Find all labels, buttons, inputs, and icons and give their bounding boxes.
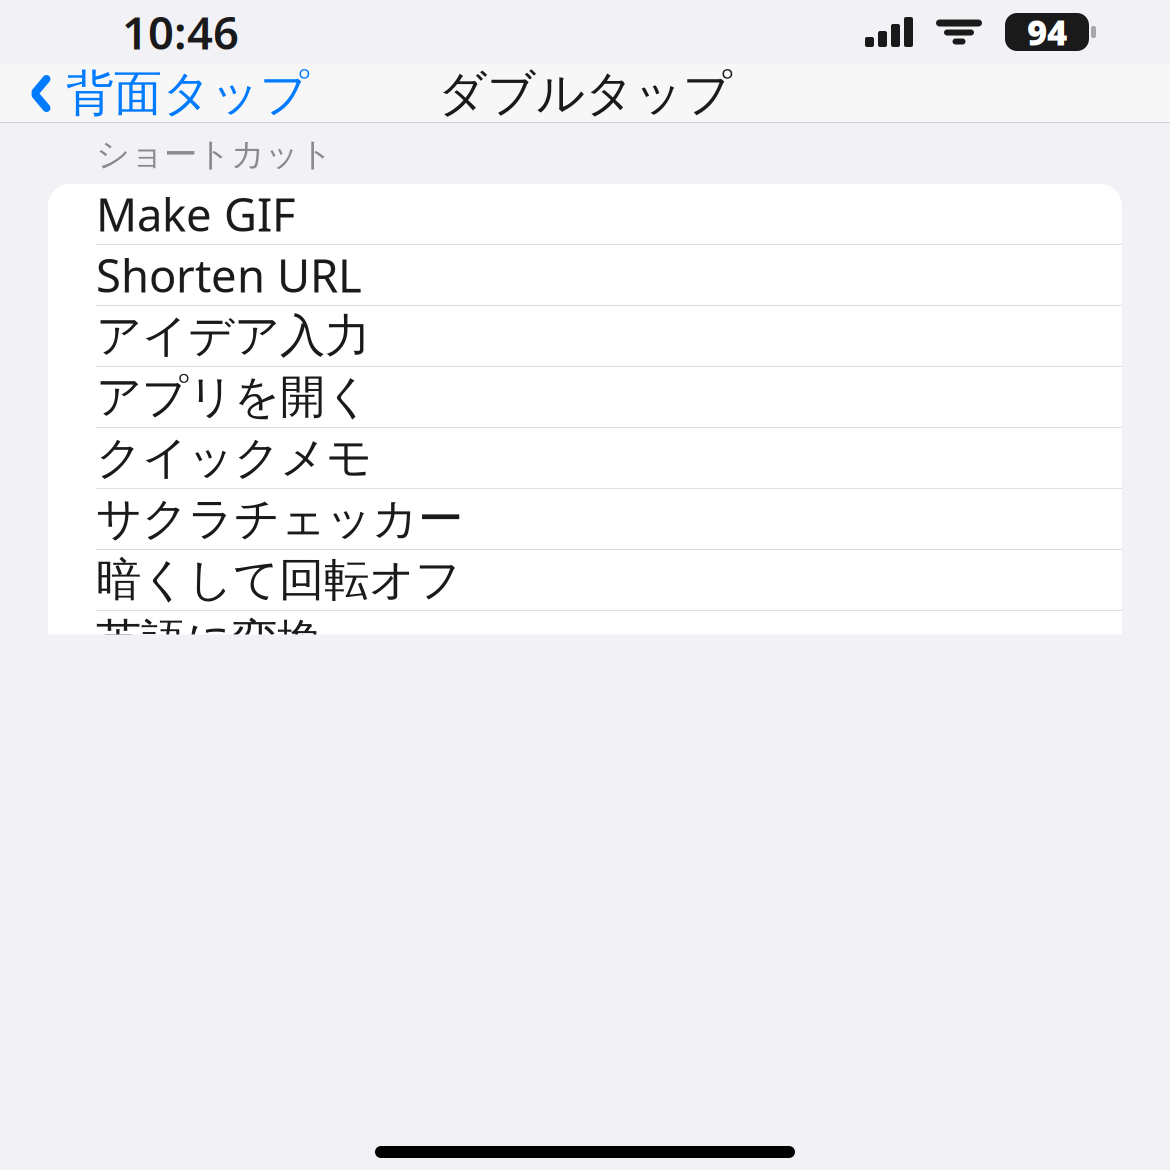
button[interactable]: クイックメモ <box>48 428 1122 489</box>
button[interactable]: サクラチェッカー <box>48 489 1122 550</box>
button[interactable]: アプリを開く <box>48 367 1122 428</box>
staticText: クイックメモ <box>96 430 372 486</box>
button[interactable]: Shorten URL <box>48 245 1122 306</box>
staticText: 10:46 <box>122 2 239 62</box>
staticText: 英語に変換 <box>96 613 322 669</box>
button[interactable]: 英語に変換 <box>48 611 1122 672</box>
staticText: 暗くして回転オフ <box>96 552 461 608</box>
staticText: ショートカット <box>96 134 333 175</box>
staticText: 94 <box>1027 9 1067 55</box>
staticText: 背面タップ <box>66 64 309 123</box>
button[interactable]: 背面タップに戻る <box>0 58 309 129</box>
button[interactable]: アイデア入力 <box>48 306 1122 367</box>
button[interactable]: Make GIF <box>48 184 1122 245</box>
staticText: アイデア入力 <box>96 308 370 364</box>
staticText: サクラチェッカー <box>96 491 463 547</box>
staticText: Shorten URL <box>96 245 362 305</box>
button[interactable]: 暗くして回転オフ <box>48 550 1122 611</box>
staticText: Make GIF <box>96 184 296 244</box>
staticText: アプリを開く <box>96 369 371 425</box>
staticText: ダブルタップ <box>438 64 732 123</box>
